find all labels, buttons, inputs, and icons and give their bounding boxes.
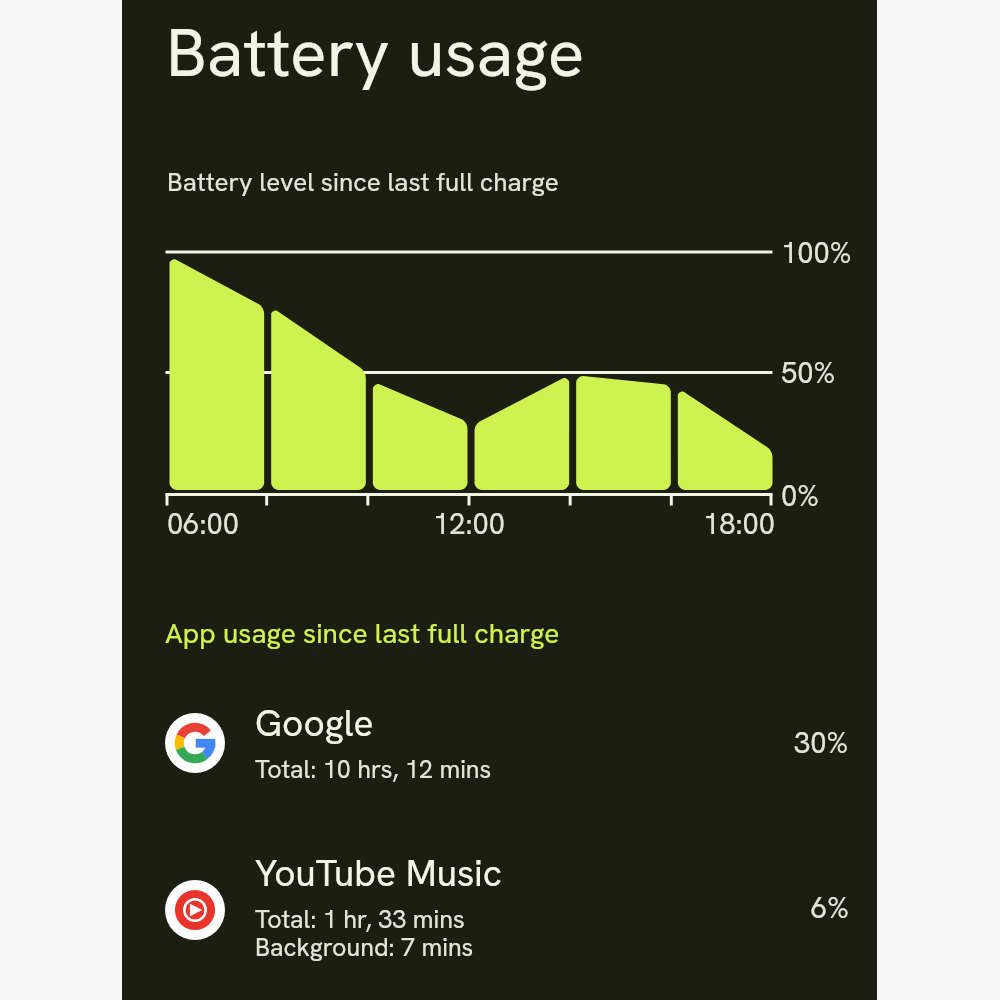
staticText: Battery usage [166, 8, 585, 97]
staticText: 06:00 [167, 505, 239, 543]
button[interactable]: YouTube Music app icon [122, 841, 877, 973]
other: Google app icon [165, 713, 225, 773]
staticText: 18:00 [703, 505, 775, 543]
staticText: Background: 7 mins [255, 931, 474, 964]
staticText: 6% [811, 889, 849, 927]
staticText: App usage since last full charge [165, 615, 560, 651]
staticText: Battery level since last full charge [167, 165, 559, 199]
staticText: 100% [781, 234, 852, 272]
staticText: 0% [781, 477, 819, 515]
button[interactable]: Google app icon [122, 693, 877, 825]
staticText: Total: 10 hrs, 12 mins [255, 753, 492, 786]
staticText: 12:00 [433, 505, 505, 543]
staticText: 30% [794, 724, 849, 762]
staticText: 50% [781, 354, 836, 392]
staticText: Google [255, 699, 374, 747]
other: YouTube Music app icon [165, 880, 225, 940]
staticText: Total: 1 hr, 33 mins [255, 903, 465, 936]
staticText: YouTube Music [255, 849, 502, 897]
